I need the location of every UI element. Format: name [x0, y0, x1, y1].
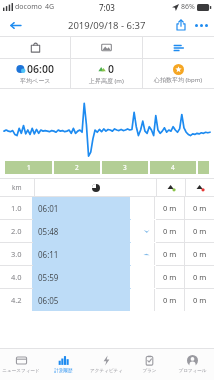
staticText: 0 m: [163, 295, 177, 305]
staticText: 7:03: [99, 2, 115, 13]
staticText: 2019/09/18 - 6:37: [68, 19, 146, 32]
button[interactable]: Splits: [143, 37, 214, 58]
button[interactable]: 計測履歴: [42, 349, 85, 380]
staticText: 1: [27, 163, 31, 172]
staticText: 0 m: [193, 203, 207, 213]
staticText: 0: [108, 62, 115, 76]
staticText: アクティビティ: [90, 368, 123, 374]
staticText: 4.2: [11, 295, 22, 305]
staticText: 05:48: [38, 226, 59, 237]
staticText: km: [12, 183, 22, 192]
staticText: 4.0: [11, 272, 22, 282]
staticText: 06:00: [27, 62, 54, 76]
staticText: 06:05: [38, 295, 59, 306]
staticText: 0 m: [193, 226, 207, 236]
button[interactable]: Map: [0, 37, 70, 58]
staticText: 3.0: [11, 249, 22, 259]
button[interactable]: 2.0: [0, 220, 214, 242]
staticText: 0 m: [193, 272, 207, 282]
button[interactable]: 06:00: [0, 59, 70, 88]
button[interactable]: アクティビティ: [85, 349, 128, 380]
button[interactable]: More options: [192, 16, 210, 34]
button[interactable]: 心拍数平均 (bpm): [143, 59, 214, 88]
button[interactable]: Share: [172, 16, 190, 34]
staticText: 4G: [45, 2, 55, 12]
staticText: 計測履歴: [54, 368, 73, 374]
staticText: 3: [123, 163, 127, 172]
staticText: 0 m: [193, 295, 207, 305]
staticText: 0 m: [163, 226, 177, 236]
staticText: 上昇高度 (m): [89, 77, 124, 85]
button[interactable]: 1.0: [0, 197, 214, 219]
button[interactable]: 4.2: [0, 289, 214, 311]
staticText: 0 m: [193, 249, 207, 259]
staticText: プロフィール: [178, 368, 207, 374]
staticText: 06:01: [38, 203, 59, 214]
button[interactable]: 4.0: [0, 266, 214, 288]
staticText: 4: [171, 163, 175, 172]
button[interactable]: 3.0: [0, 243, 214, 265]
staticText: docomo: [15, 2, 42, 12]
button[interactable]: ニュースフィード: [0, 349, 42, 380]
staticText: 2.0: [11, 226, 22, 236]
button[interactable]: プラン: [128, 349, 171, 380]
button[interactable]: 0: [71, 59, 142, 88]
staticText: 1.0: [11, 203, 22, 213]
button[interactable]: Back: [6, 16, 24, 34]
staticText: ニュースフィード: [2, 368, 40, 374]
staticText: 心拍数平均 (bpm): [154, 76, 203, 84]
staticText: 05:59: [38, 272, 59, 283]
staticText: プラン: [142, 368, 157, 374]
staticText: 86%: [181, 2, 195, 12]
staticText: 0 m: [163, 249, 177, 259]
staticText: 平均ペース: [20, 77, 51, 85]
staticText: 0 m: [163, 272, 177, 282]
staticText: 06:11: [38, 249, 59, 260]
staticText: 0 m: [163, 203, 177, 213]
button[interactable]: プロフィール: [171, 349, 214, 380]
staticText: 2: [75, 163, 79, 172]
button[interactable]: Photos: [71, 37, 142, 58]
